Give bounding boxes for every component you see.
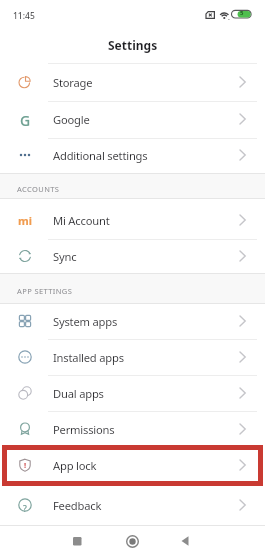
staticText: APP SETTINGS [17,286,73,296]
staticText: Installed apps [53,350,124,365]
button[interactable]: Installed apps [0,339,265,375]
button[interactable]: App lock [0,447,265,483]
staticText: Settings [108,37,158,53]
button[interactable] [62,526,92,556]
button[interactable]: Mi Account [0,202,265,238]
staticText: mi [18,213,33,227]
button[interactable]: Storage [0,64,265,100]
staticText: Additional settings [53,148,148,163]
button[interactable]: Dual apps [0,375,265,411]
staticText: ! [24,460,27,470]
staticText: G [20,111,31,127]
staticText: Google [53,112,90,127]
button[interactable]: System apps [0,303,265,339]
staticText: App lock [53,458,97,473]
button[interactable]: Google [0,101,265,137]
staticText: Dual apps [53,386,104,401]
staticText: 11:45 [13,10,35,22]
staticText: Feedback [53,498,102,513]
button[interactable]: Additional settings [0,137,265,173]
staticText: Permissions [53,422,115,437]
button[interactable] [117,526,147,556]
button[interactable]: Sync [0,238,265,274]
button[interactable]: Permissions [0,411,265,447]
button[interactable]: Feedback [0,487,265,523]
staticText: ACCOUNTS [17,184,60,194]
staticText: Mi Account [53,213,110,228]
staticText: 5 [240,9,244,17]
staticText: System apps [53,314,118,329]
staticText: Sync [53,249,77,264]
button[interactable] [170,526,200,556]
staticText: ? [23,503,27,515]
staticText: Storage [53,75,93,90]
